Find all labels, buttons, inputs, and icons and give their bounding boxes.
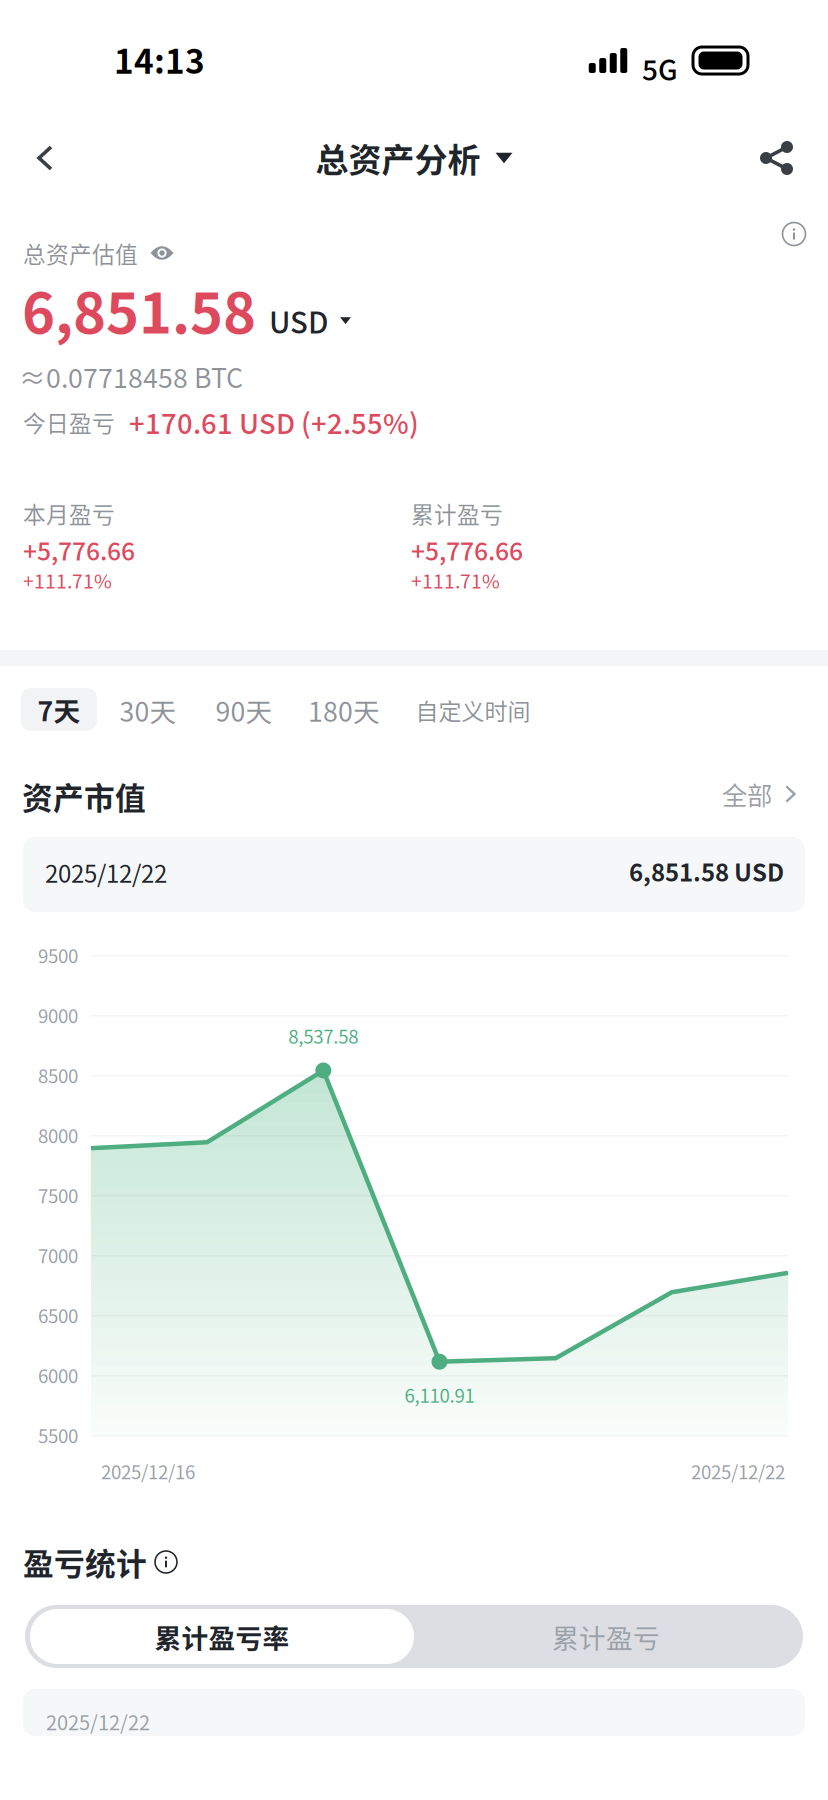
staticText: 总资产分析 [315,134,480,182]
staticText: 90天 [215,691,272,729]
staticText: 本月盈亏 [23,497,115,530]
staticText: 9500 [38,941,78,968]
staticText: +111.71% [411,566,500,594]
staticText: ≈0.07718458 BTC [19,357,243,396]
button[interactable]: Back [0,124,90,192]
button[interactable]: 180天 [289,685,399,735]
staticText: 累计盈亏率 [154,1617,289,1656]
staticText: 5500 [38,1421,78,1448]
staticText: 累计盈亏 [411,497,503,530]
staticText: 2025/12/22 [46,1707,150,1736]
staticText: 7天 [37,690,80,729]
staticText: 自定义时间 [415,693,530,727]
staticText: 6000 [38,1361,78,1388]
staticText: 6,851.58 USD [629,854,784,888]
staticText: 累计盈亏 [552,1617,660,1656]
staticText: +5,776.66 [23,532,135,568]
staticText: 2025/12/16 [101,1457,195,1484]
staticText: 2025/12/22 [45,855,167,890]
staticText: 今日盈亏 [23,406,115,438]
staticText: 6500 [38,1301,78,1328]
staticText: 7000 [38,1241,78,1268]
staticText: 7500 [38,1181,78,1208]
staticText: 9000 [38,1001,78,1028]
button[interactable]: 累计盈亏率 [30,1609,414,1664]
staticText: 8000 [38,1121,78,1148]
staticText: 5G [642,48,678,88]
button[interactable]: 自定义时间 [398,685,548,735]
staticText: 盈亏统计 [23,1540,147,1584]
staticText: USD [269,299,329,342]
staticText: +5,776.66 [411,532,523,568]
staticText: 2025/12/22 [691,1457,785,1484]
staticText: 6,851.58 [22,268,256,350]
staticText: 资产市值 [22,774,146,818]
button[interactable]: 30天 [98,685,198,735]
button[interactable]: 90天 [194,685,294,735]
staticText: +111.71% [23,566,112,594]
button[interactable]: 全部 [666,768,796,820]
button[interactable]: 7天 [21,688,97,731]
button[interactable]: USD [269,299,351,342]
button[interactable]: Toggle balance visibility [150,243,174,263]
staticText: 14:13 [114,35,205,83]
button[interactable]: 累计盈亏 [414,1609,798,1664]
staticText: 8500 [38,1061,78,1088]
staticText: 180天 [308,691,380,729]
staticText: 全部 [722,776,772,812]
staticText: 总资产估值 [23,237,138,269]
staticText: 6,110.91 [404,1381,474,1408]
button[interactable]: Info [762,206,826,262]
staticText: 30天 [119,691,176,729]
button[interactable]: Share [732,124,822,192]
staticText: 8,537.58 [288,1022,358,1049]
staticText: +170.61 USD (+2.55%) [129,402,419,442]
